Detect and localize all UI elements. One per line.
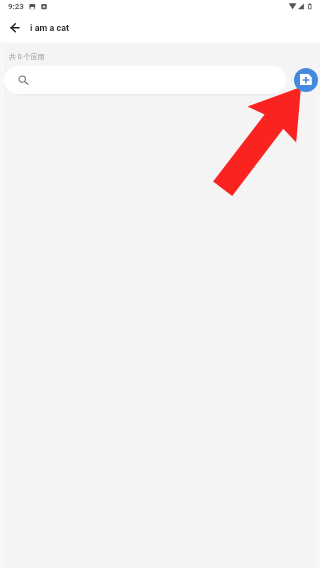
staticText: 9:23 <box>8 2 24 11</box>
button[interactable]: Back <box>0 14 28 42</box>
button[interactable] <box>4 66 286 94</box>
button[interactable]: Add app <box>294 68 318 92</box>
staticText: 共 0 个应用 <box>9 52 45 61</box>
staticText: i am a cat <box>30 23 70 34</box>
